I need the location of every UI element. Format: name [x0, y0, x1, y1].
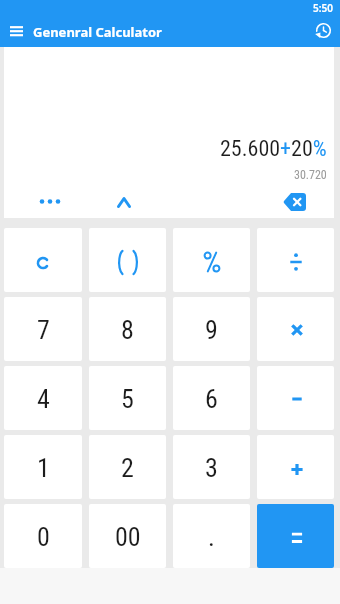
- staticText: 7: [37, 315, 50, 345]
- button[interactable]: 7: [4, 297, 82, 361]
- button[interactable]: .: [173, 504, 250, 568]
- staticText: 0: [37, 522, 50, 552]
- button[interactable]: [257, 366, 334, 430]
- button[interactable]: 4: [4, 366, 82, 430]
- staticText: 4: [37, 384, 50, 414]
- button[interactable]: 6: [173, 366, 250, 430]
- button[interactable]: 0: [4, 504, 82, 568]
- staticText: Genenral Calculator: [33, 23, 162, 41]
- button[interactable]: [10, 26, 23, 37]
- button[interactable]: [39, 198, 61, 205]
- button[interactable]: 2: [89, 435, 166, 499]
- button[interactable]: 00: [89, 504, 166, 568]
- button[interactable]: [284, 193, 306, 211]
- button[interactable]: [257, 228, 334, 292]
- staticText: 25.600+20%: [220, 136, 327, 162]
- staticText: .: [208, 522, 215, 552]
- staticText: 1: [37, 453, 50, 483]
- button[interactable]: [4, 228, 82, 292]
- staticText: 30.720: [294, 168, 327, 182]
- button[interactable]: [89, 228, 166, 292]
- button[interactable]: [117, 197, 131, 208]
- staticText: 9: [205, 315, 218, 345]
- button[interactable]: [257, 504, 334, 568]
- staticText: 5: [121, 384, 134, 414]
- staticText: 00: [115, 522, 141, 552]
- staticText: 5:50: [313, 1, 333, 15]
- staticText: 3: [205, 453, 218, 483]
- staticText: 2: [121, 453, 134, 483]
- button[interactable]: [314, 21, 333, 40]
- staticText: 8: [121, 315, 134, 345]
- staticText: 6: [205, 384, 218, 414]
- button[interactable]: [257, 297, 334, 361]
- button[interactable]: [173, 228, 250, 292]
- button[interactable]: [257, 435, 334, 499]
- button[interactable]: 1: [4, 435, 82, 499]
- button[interactable]: 9: [173, 297, 250, 361]
- button[interactable]: 3: [173, 435, 250, 499]
- button[interactable]: 5: [89, 366, 166, 430]
- button[interactable]: 8: [89, 297, 166, 361]
